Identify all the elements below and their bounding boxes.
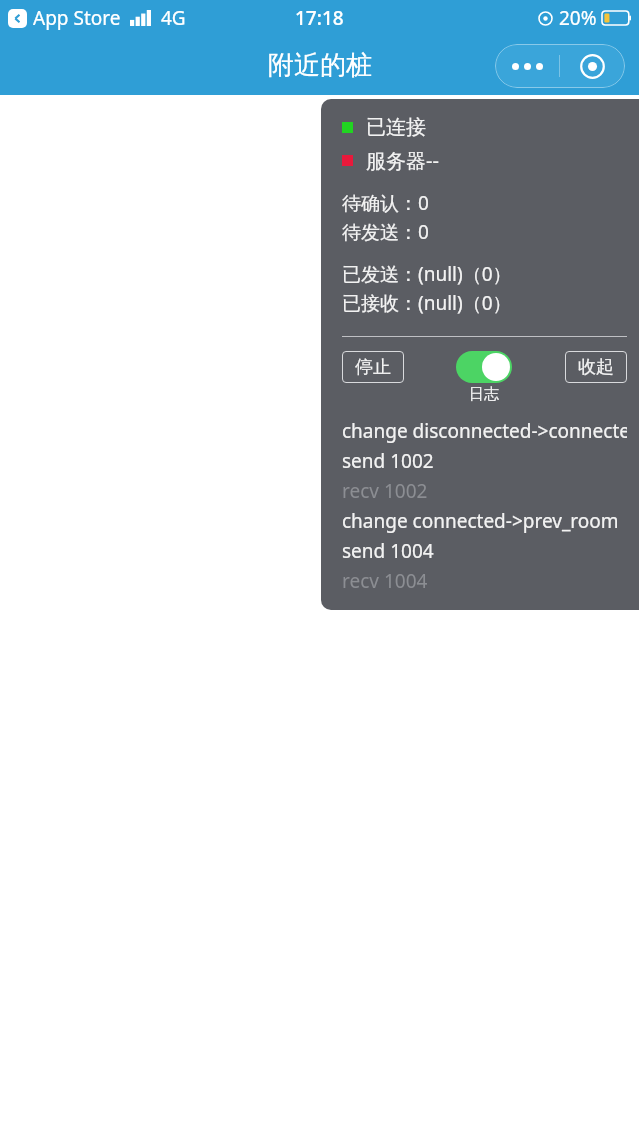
- staticText: 服务器--: [366, 147, 439, 174]
- staticText: recv 1002: [342, 478, 428, 504]
- button[interactable]: 收起: [565, 351, 627, 383]
- staticText: 已连接: [366, 115, 426, 140]
- staticText: change connected->prev_room: [342, 508, 619, 534]
- staticText: 停止: [355, 356, 391, 379]
- button[interactable]: Close: [560, 44, 625, 88]
- staticText: 收起: [578, 356, 614, 379]
- staticText: 4G: [161, 5, 186, 31]
- button[interactable]: More: [495, 44, 559, 88]
- staticText: 17:18: [295, 5, 344, 31]
- staticText: change disconnected->connected: [342, 418, 627, 444]
- button[interactable]: Toggle log: [456, 351, 512, 383]
- staticText: recv 1004: [342, 568, 428, 594]
- staticText: 日志: [469, 385, 499, 404]
- staticText: 待确认：0: [342, 190, 429, 216]
- staticText: 附近的桩: [268, 49, 372, 82]
- staticText: 20%: [559, 5, 597, 31]
- staticText: 待发送：0: [342, 219, 429, 245]
- staticText: App Store: [33, 5, 121, 31]
- button[interactable]: 停止: [342, 351, 404, 383]
- staticText: send 1004: [342, 538, 434, 564]
- staticText: 已接收：(null)（0）: [342, 290, 512, 316]
- staticText: 已发送：(null)（0）: [342, 261, 512, 287]
- staticText: send 1002: [342, 448, 434, 474]
